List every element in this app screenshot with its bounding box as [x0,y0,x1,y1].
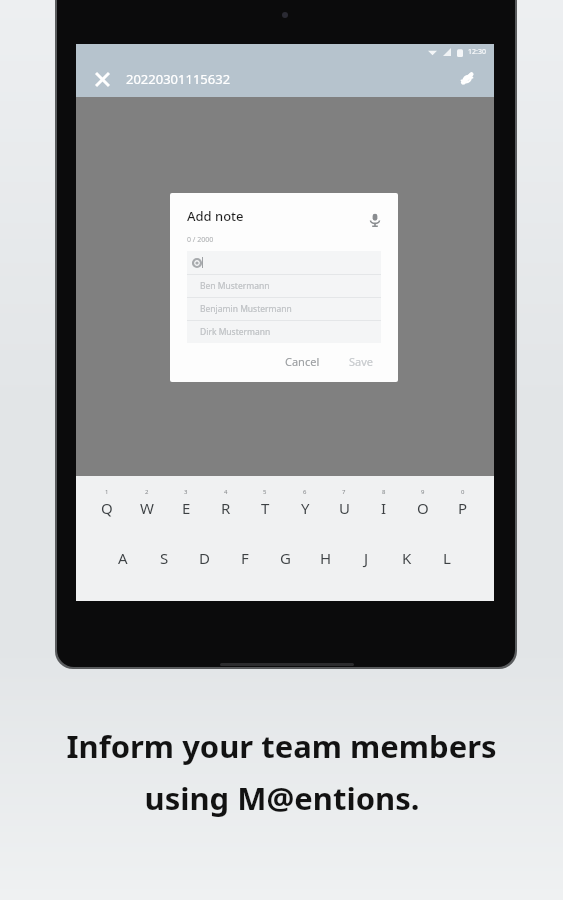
button[interactable]: F [229,548,261,568]
staticText: K [402,548,412,568]
staticText: 1 [105,488,109,496]
staticText: Dirk Mustermann [200,326,271,338]
staticText: I [381,498,387,518]
staticText: G [280,548,291,568]
staticText: 5 [263,488,267,496]
staticText: 4 [224,488,228,496]
staticText: Y [301,498,310,518]
staticText: F [241,548,249,568]
button[interactable]: Cancel [276,349,329,374]
button[interactable]: L [431,548,463,568]
button[interactable]: A [107,548,139,568]
staticText: Inform your team members [66,725,497,767]
button[interactable]: K [391,548,423,568]
staticText: Cancel [285,354,320,369]
staticText: 12:30 [468,47,486,57]
button[interactable]: J [350,548,382,568]
staticText: A [118,548,128,568]
button[interactable]: Voice input [362,207,388,233]
staticText: D [199,548,210,568]
button[interactable]: D [188,548,220,568]
button[interactable]: Save [343,349,380,374]
button[interactable]: 0 [446,488,480,518]
staticText: 2 [145,488,149,496]
staticText: Q [101,498,113,518]
staticText: P [458,498,468,518]
staticText: 0 / 2000 [187,235,214,245]
staticText: 0 [461,488,465,496]
staticText: 7 [342,488,346,496]
staticText: R [221,498,231,518]
button[interactable]: Attach file [452,64,482,94]
button[interactable]: Close [88,65,116,93]
staticText: 20220301115632 [126,70,231,88]
staticText: J [364,548,369,568]
staticText: 6 [303,488,307,496]
staticText: Save [349,354,374,369]
button[interactable]: 8 [367,488,401,518]
button[interactable]: 1 [90,488,124,518]
staticText: E [182,498,191,518]
staticText: Benjamin Mustermann [200,303,292,315]
staticText: Ben Mustermann [200,280,270,292]
button[interactable]: 2 [130,488,164,518]
button[interactable]: Dirk Mustermann [187,321,381,343]
staticText: using M@entions. [144,777,420,819]
staticText: U [339,498,350,518]
button[interactable]: 9 [406,488,440,518]
button[interactable]: 6 [288,488,322,518]
button[interactable]: 5 [248,488,282,518]
staticText: Add note [187,207,244,225]
button[interactable]: 3 [169,488,203,518]
button[interactable]: 4 [209,488,243,518]
staticText: S [160,548,169,568]
button[interactable]: Ben Mustermann [187,275,381,297]
button[interactable]: H [310,548,342,568]
staticText: O [417,498,429,518]
staticText: T [261,498,270,518]
button[interactable]: S [148,548,180,568]
staticText: L [443,548,451,568]
staticText: H [320,548,332,568]
button[interactable]: 7 [327,488,361,518]
staticText: W [140,498,154,518]
button[interactable]: G [269,548,301,568]
staticText: 3 [184,488,188,496]
button[interactable]: Benjamin Mustermann [187,298,381,320]
staticText: 8 [382,488,386,496]
staticText: 9 [421,488,425,496]
